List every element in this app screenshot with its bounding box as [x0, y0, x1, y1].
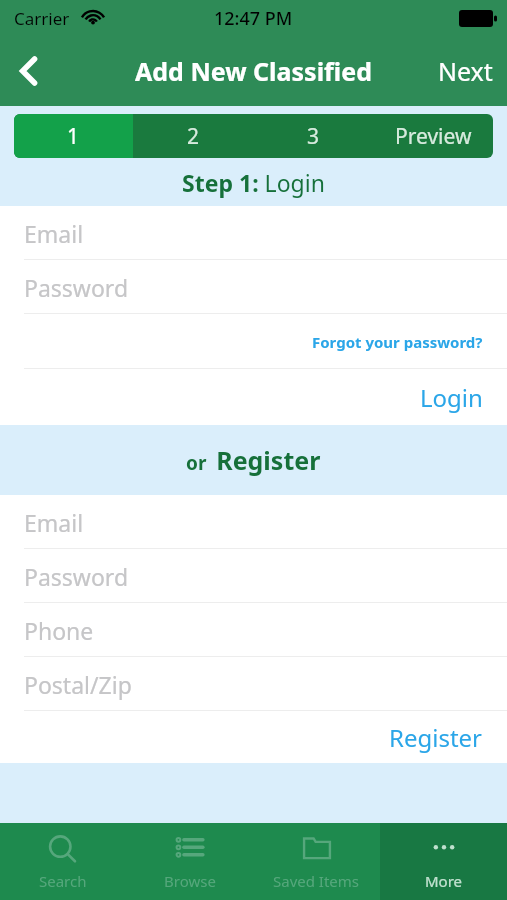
staticText: Login — [420, 381, 483, 414]
staticText: Browse — [164, 871, 216, 891]
staticText: Postal/Zip — [24, 669, 132, 700]
button[interactable]: 2 — [133, 114, 253, 158]
button[interactable]: Forgot your password? — [0, 314, 507, 369]
button[interactable]: Preview — [373, 114, 493, 158]
button[interactable]: Login — [0, 369, 507, 425]
button[interactable]: 3 — [253, 114, 373, 158]
staticText: Password — [24, 561, 129, 592]
staticText: Forgot your password? — [312, 332, 483, 352]
button[interactable]: 1 — [14, 114, 133, 158]
staticText: Email — [24, 218, 84, 249]
staticText: 1 — [67, 122, 80, 151]
staticText: Preview — [395, 122, 472, 151]
button[interactable]: Postal/Zip — [0, 657, 507, 711]
staticText: 12:47 PM — [214, 6, 293, 31]
button[interactable]: Browse — [126, 823, 253, 900]
staticText: Email — [24, 507, 84, 538]
staticText: Register — [389, 721, 483, 754]
staticText: Password — [24, 272, 129, 303]
staticText: or Register — [186, 443, 321, 477]
staticText: Next — [438, 54, 493, 88]
button[interactable]: Email — [0, 495, 507, 549]
button[interactable]: Next — [424, 44, 507, 98]
button[interactable]: Back — [0, 42, 58, 100]
staticText: Phone — [24, 615, 94, 646]
staticText: 2 — [187, 122, 200, 151]
button[interactable]: Password — [0, 549, 507, 603]
staticText: Search — [39, 871, 87, 891]
button[interactable]: Phone — [0, 603, 507, 657]
button[interactable]: Email — [0, 206, 507, 260]
staticText: Carrier — [14, 7, 70, 30]
button[interactable]: More — [380, 823, 507, 900]
button[interactable]: Saved Items — [253, 823, 380, 900]
button[interactable]: Password — [0, 260, 507, 314]
staticText: Saved Items — [273, 871, 360, 891]
staticText: Step 1: Login — [182, 167, 325, 198]
staticText: More — [425, 871, 463, 891]
button[interactable]: Search — [0, 823, 126, 900]
button[interactable]: Register — [0, 711, 507, 763]
staticText: 3 — [307, 122, 320, 151]
staticText: Add New Classified — [135, 54, 372, 88]
